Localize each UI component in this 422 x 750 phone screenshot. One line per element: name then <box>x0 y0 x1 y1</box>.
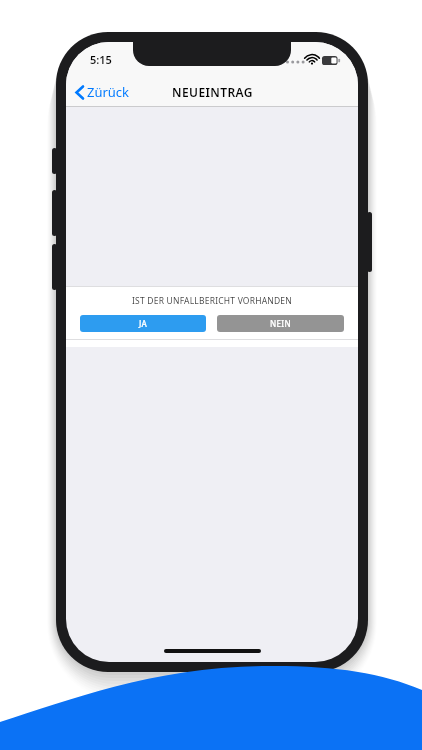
staticText: NEUEINTRAG <box>172 84 253 100</box>
staticText: JA <box>139 318 148 329</box>
staticText: NEIN <box>270 318 291 329</box>
button[interactable]: Zürück <box>66 79 140 105</box>
button[interactable]: JA <box>80 315 206 332</box>
button[interactable]: NEIN <box>217 315 344 332</box>
staticText: IST DER UNFALLBERICHT VORHANDEN <box>66 295 358 307</box>
staticText: 5:15 <box>90 52 112 67</box>
staticText: Zürück <box>87 83 130 101</box>
